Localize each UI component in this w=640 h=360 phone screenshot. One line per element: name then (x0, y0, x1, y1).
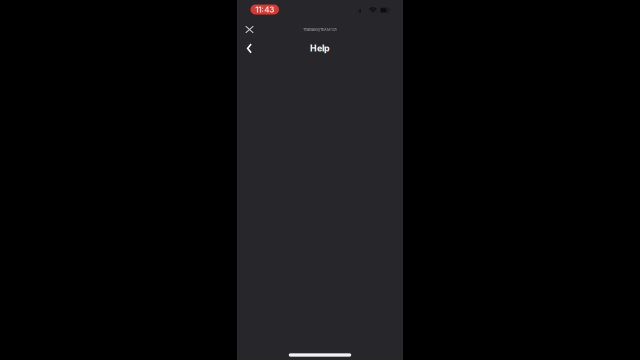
staticText: 11:43 (255, 5, 274, 14)
button[interactable]: Close (237, 20, 265, 38)
button[interactable]: Back (237, 38, 265, 59)
staticText: Help (310, 43, 330, 54)
staticText: ThatSassyTEAM 101 (303, 27, 337, 32)
